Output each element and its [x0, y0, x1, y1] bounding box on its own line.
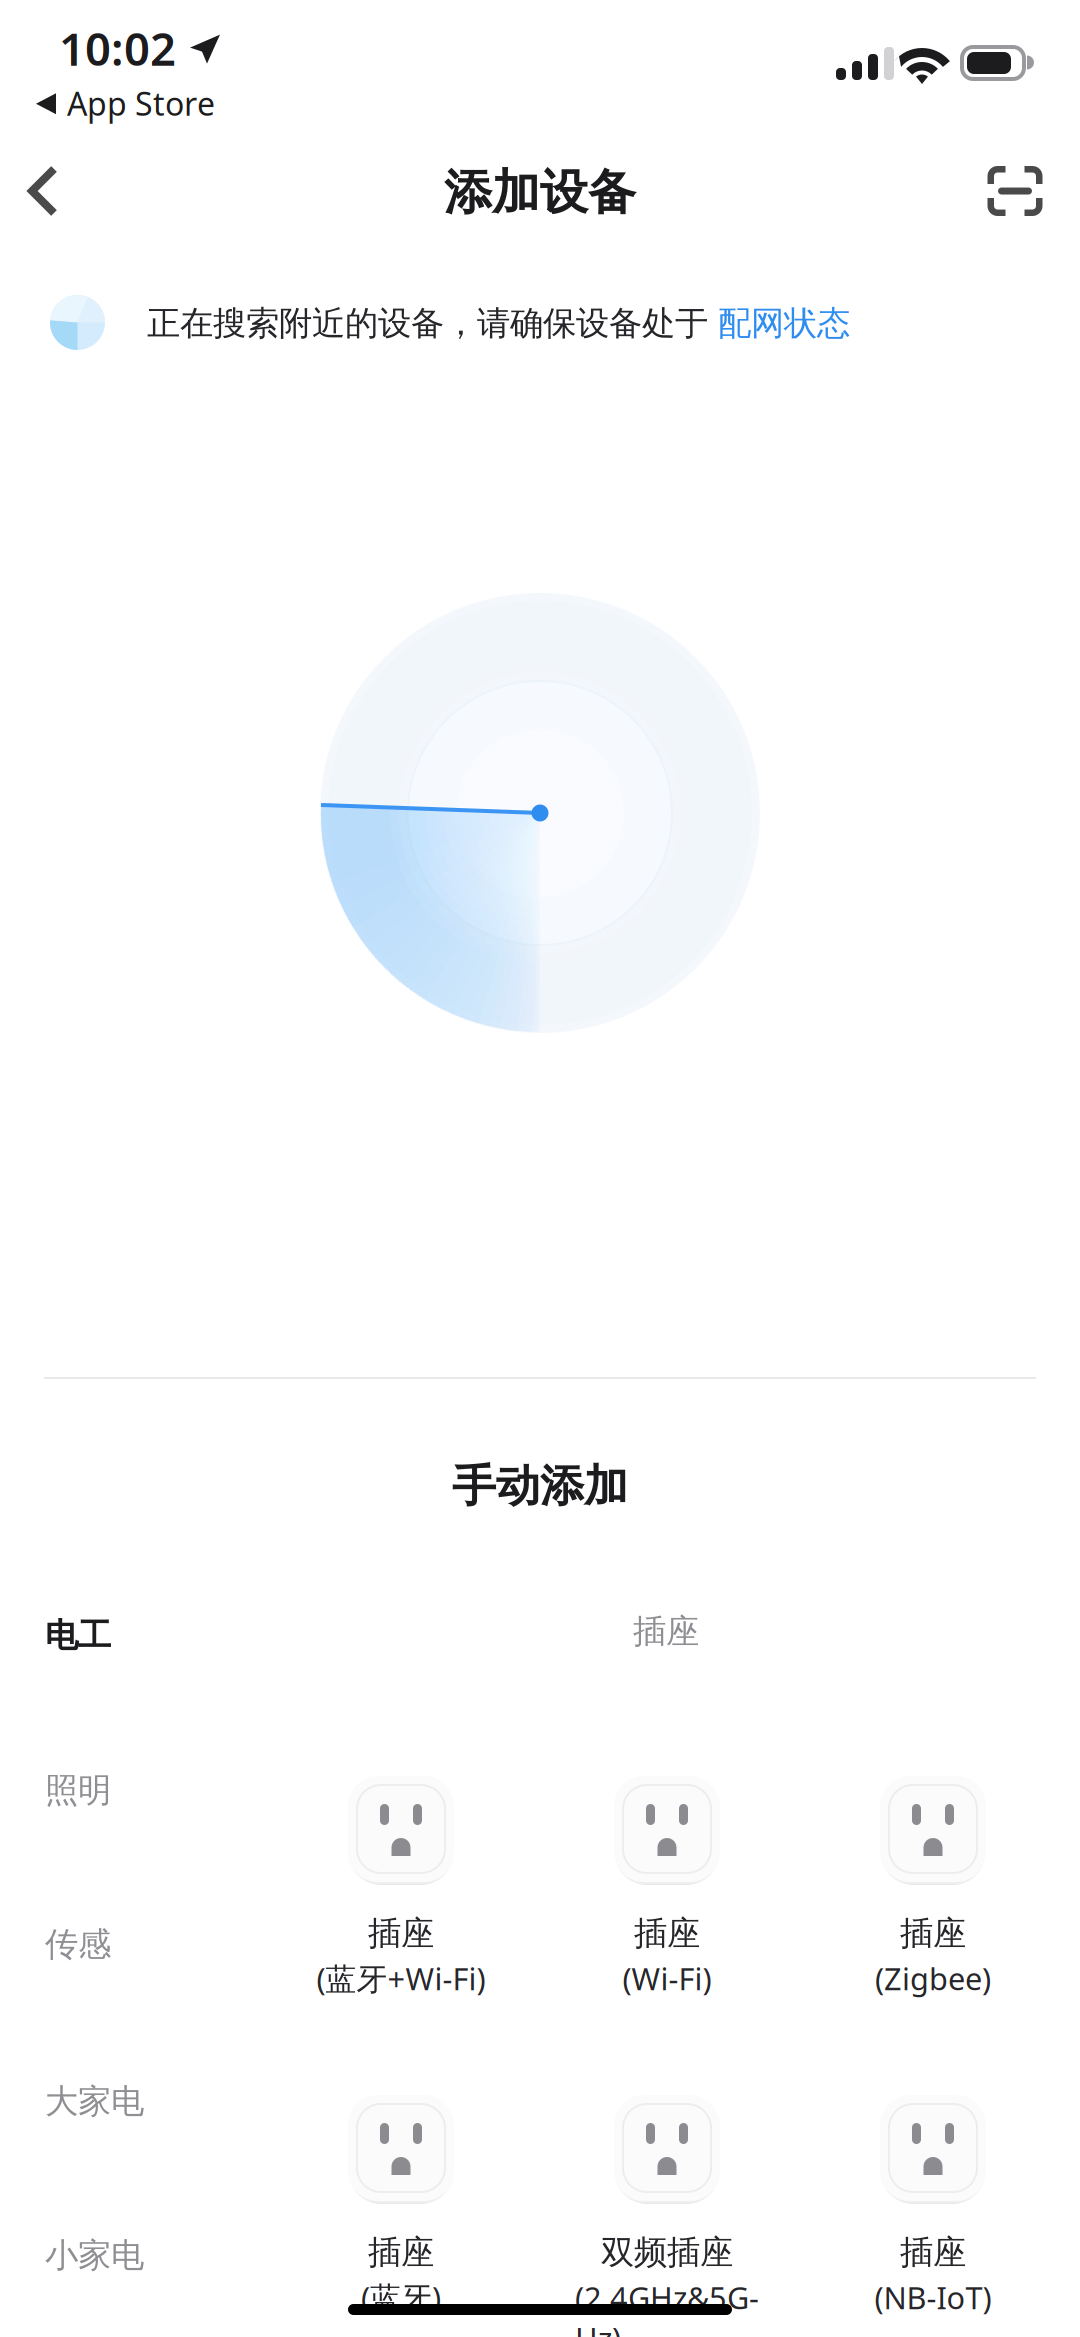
button[interactable]: 插座	[800, 2095, 1066, 2318]
staticText: App Store	[67, 82, 215, 124]
staticText: 插座	[900, 2232, 966, 2273]
staticText: 添加设备	[444, 163, 636, 222]
button[interactable]: 插座	[268, 2095, 534, 2318]
staticText: 传感	[45, 1924, 111, 1965]
staticText: (蓝牙)	[361, 2277, 441, 2318]
staticText: 插座	[634, 1913, 700, 1954]
staticText: 正在搜索附近的设备，请确保设备处于	[147, 303, 708, 344]
staticText: 插座	[633, 1611, 699, 1652]
staticText: (NB-IoT)	[874, 2277, 991, 2318]
staticText: 插座	[900, 1913, 966, 1954]
button[interactable]: 插座	[534, 1776, 800, 1999]
staticText: 小家电	[45, 2235, 144, 2276]
button[interactable]: 双频插座	[534, 2095, 800, 2337]
button[interactable]: 大家电	[45, 2070, 245, 2133]
button[interactable]: 插座	[268, 1776, 534, 1999]
button[interactable]: 传感	[45, 1913, 245, 1976]
button[interactable]: Back	[8, 153, 78, 229]
staticText: (Wi-Fi)	[622, 1958, 711, 1999]
staticText: 双频插座	[601, 2232, 733, 2273]
button[interactable]: Scan QR code	[978, 153, 1052, 229]
staticText: (Zigbee)	[875, 1958, 991, 1999]
button[interactable]: 电工	[45, 1604, 245, 1667]
button[interactable]: 照明	[45, 1759, 245, 1822]
staticText: 电工	[45, 1615, 111, 1656]
staticText: 大家电	[45, 2081, 144, 2122]
staticText: (2.4GHz&5GHz)	[575, 2277, 759, 2337]
staticText: 照明	[45, 1770, 111, 1811]
staticText: (蓝牙+Wi-Fi)	[316, 1958, 485, 1999]
staticText: 手动添加	[452, 1459, 628, 1513]
staticText: 10:02	[59, 18, 176, 78]
button[interactable]: 小家电	[45, 2224, 245, 2287]
staticText: 插座	[368, 1913, 434, 1954]
staticText: 插座	[368, 2232, 434, 2273]
staticText: 配网状态	[708, 303, 850, 344]
button[interactable]: 插座	[800, 1776, 1066, 1999]
